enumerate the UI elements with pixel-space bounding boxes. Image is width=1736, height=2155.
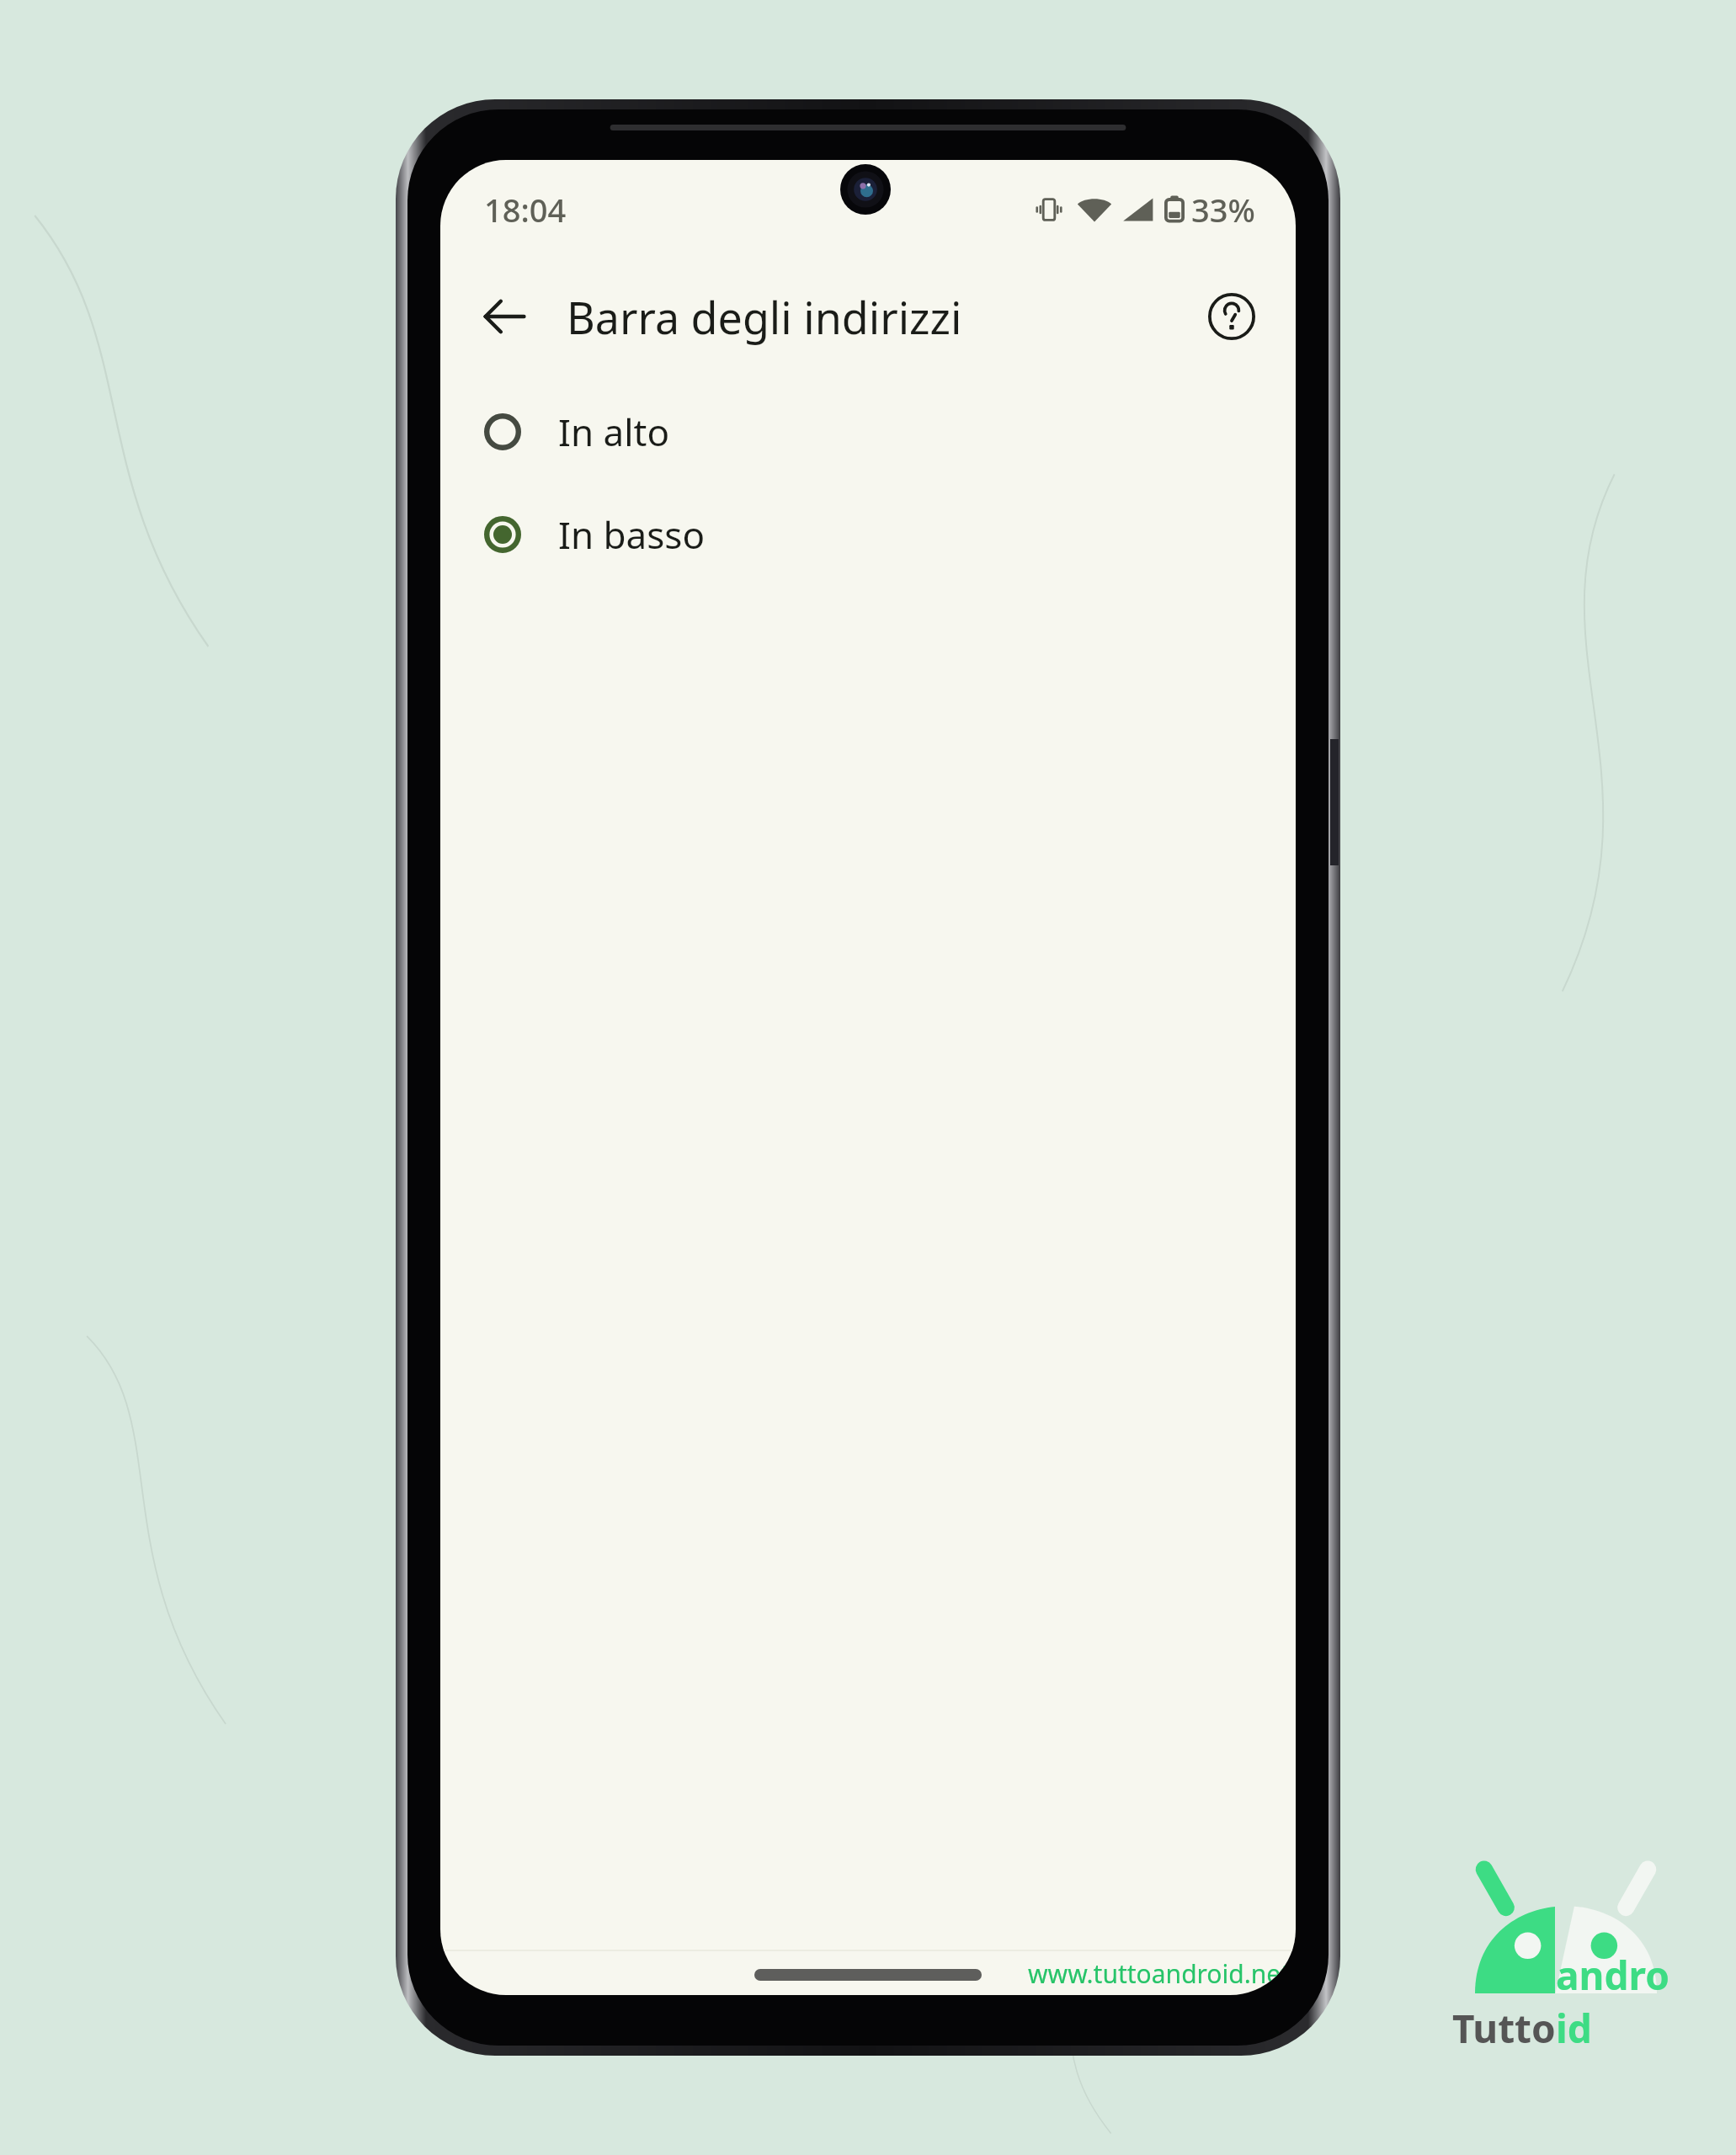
staticText: Barra degli indirizzi — [567, 287, 962, 347]
staticText: www.tuttoandroid.net — [1028, 1956, 1291, 1991]
staticText: 33% — [1191, 188, 1255, 231]
staticText: In basso — [558, 509, 706, 560]
button[interactable]: Aiuto — [1190, 274, 1274, 359]
staticText: 18:04 — [484, 188, 567, 231]
staticText: android — [1556, 1949, 1680, 2055]
button[interactable]: Indietro — [459, 271, 550, 362]
button[interactable]: In alto — [440, 380, 1296, 483]
staticText: In alto — [558, 407, 670, 457]
button[interactable]: In basso — [440, 483, 1296, 586]
staticText: Tutto — [1452, 2002, 1556, 2055]
